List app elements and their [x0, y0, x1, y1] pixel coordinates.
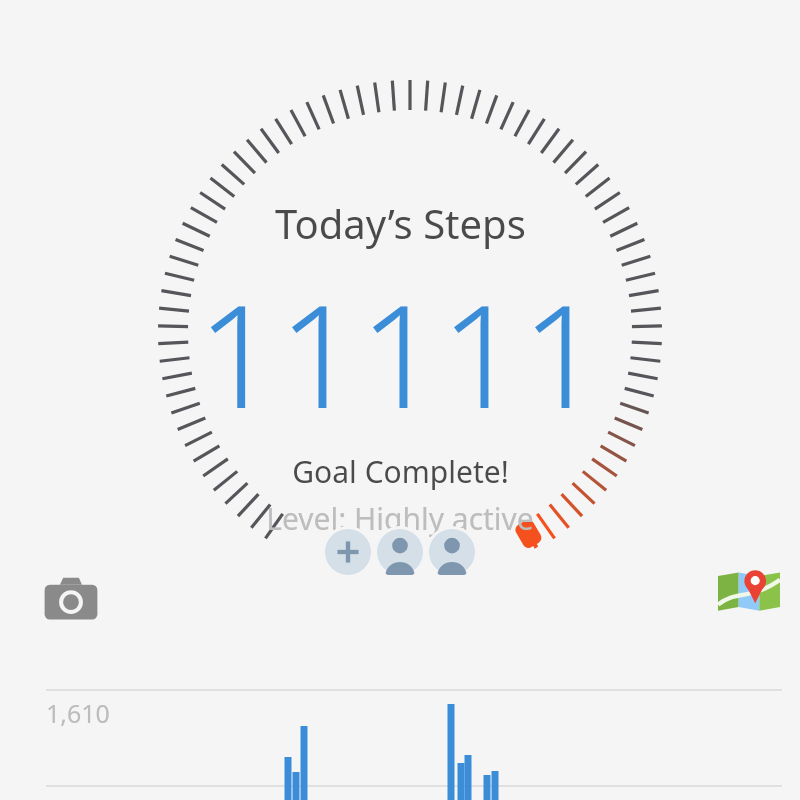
staticText: 11111 — [197, 256, 603, 449]
staticText: Goal Complete! — [292, 451, 509, 492]
staticText: 1,610 — [46, 696, 110, 730]
button[interactable]: Add friend — [322, 526, 374, 578]
button[interactable]: Camera — [42, 572, 100, 630]
staticText: Today’s Steps — [275, 196, 526, 250]
button[interactable]: Friend 2 — [426, 526, 478, 578]
staticText: Level: Highly active — [266, 498, 534, 539]
button[interactable]: Friend 1 — [374, 526, 426, 578]
button[interactable]: Map — [718, 560, 780, 622]
